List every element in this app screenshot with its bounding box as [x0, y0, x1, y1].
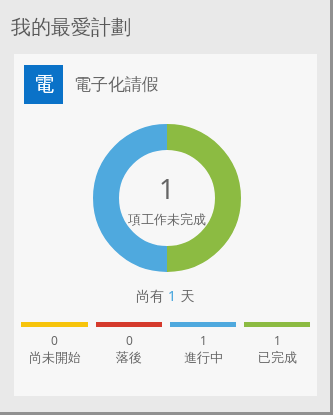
staticText: 1 [168, 286, 177, 305]
button[interactable]: 0 [21, 322, 88, 365]
button[interactable]: 1 [244, 322, 310, 365]
staticText: 0 [126, 332, 133, 348]
button[interactable]: 1 [170, 322, 236, 365]
staticText: 天 [177, 286, 195, 305]
staticText: 電 [34, 72, 54, 97]
staticText: 尚未開始 [29, 349, 81, 365]
button[interactable]: 電 [14, 54, 317, 396]
staticText: 1 [159, 170, 175, 207]
button[interactable]: 0 [96, 322, 162, 365]
staticText: 電子化請假 [74, 74, 159, 95]
staticText: 我的最愛計劃 [11, 15, 131, 40]
staticText: 項工作未完成 [128, 211, 206, 227]
staticText: 1 [200, 332, 207, 348]
button[interactable]: 電 [24, 64, 307, 104]
staticText: 已完成 [258, 349, 297, 365]
staticText: 落後 [116, 349, 142, 365]
staticText: 尚有 [136, 286, 168, 305]
staticText: 進行中 [184, 349, 223, 365]
staticText: 0 [51, 332, 58, 348]
staticText: 1 [274, 332, 281, 348]
